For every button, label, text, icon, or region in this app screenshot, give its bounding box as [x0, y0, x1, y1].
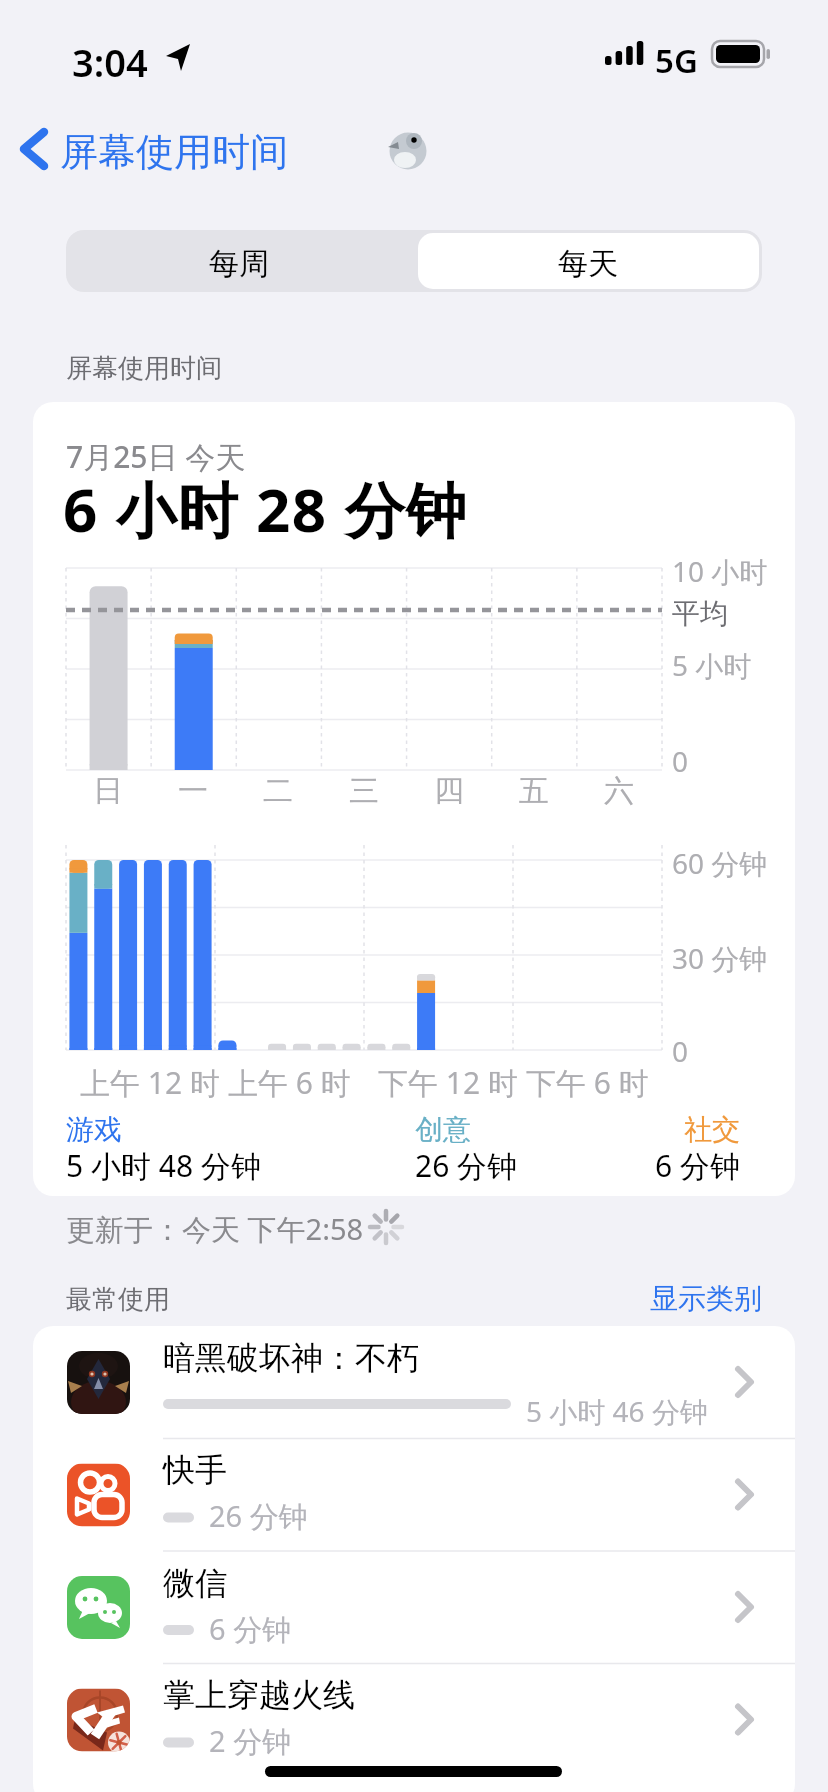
staticText: 二 — [263, 772, 293, 810]
button[interactable] — [66, 230, 414, 292]
staticText: 2 分钟 — [209, 1721, 292, 1761]
staticText: 一 — [178, 772, 208, 810]
staticText: 6 小时 28 分钟 — [63, 468, 468, 550]
staticText: 创意 — [415, 1112, 471, 1147]
staticText: 每天 — [558, 245, 618, 283]
staticText: 下午 6 时 — [526, 1062, 649, 1103]
staticText: 5 小时 48 分钟 — [66, 1145, 261, 1186]
staticText: 快手 — [163, 1450, 227, 1490]
staticText: 暗黑破坏神：不朽 — [163, 1338, 419, 1378]
staticText: 日 — [93, 772, 123, 810]
staticText: 10 小时 — [672, 552, 768, 590]
button[interactable] — [33, 1664, 795, 1776]
staticText: 26 分钟 — [415, 1145, 518, 1186]
staticText: 上午 6 时 — [228, 1062, 351, 1103]
staticText: 5G — [655, 38, 698, 83]
staticText: 7月25日 今天 — [66, 436, 246, 477]
staticText: 五 — [519, 772, 549, 810]
staticText: 社交 — [684, 1112, 740, 1147]
staticText: 0 — [672, 1032, 689, 1070]
staticText: 微信 — [163, 1563, 227, 1603]
staticText: 游戏 — [66, 1112, 122, 1147]
staticText: 平均 — [672, 596, 728, 631]
staticText: 四 — [434, 772, 464, 810]
staticText: 掌上穿越火线 — [163, 1675, 355, 1715]
staticText: 6 分钟 — [209, 1609, 292, 1649]
staticText: 更新于：今天 下午2:58 — [66, 1209, 364, 1249]
staticText: 26 分钟 — [209, 1496, 308, 1536]
staticText: 下午 12 时 — [378, 1062, 518, 1103]
staticText: 3:04 — [72, 36, 148, 88]
staticText: 屏幕使用时间 — [66, 352, 222, 385]
button[interactable] — [414, 230, 762, 292]
staticText: 六 — [604, 772, 634, 810]
staticText: 显示类别 — [650, 1281, 762, 1316]
staticText: 5 小时 — [672, 646, 752, 684]
staticText: 屏幕使用时间 — [60, 128, 288, 176]
button[interactable] — [645, 1275, 775, 1320]
staticText: 60 分钟 — [672, 844, 768, 882]
staticText: 5 小时 46 分钟 — [526, 1392, 708, 1430]
staticText: 0 — [672, 742, 689, 780]
staticText: 上午 12 时 — [80, 1062, 220, 1103]
staticText: 最常使用 — [66, 1283, 170, 1316]
staticText: 每周 — [209, 245, 269, 283]
button[interactable] — [33, 1439, 795, 1551]
button[interactable] — [14, 120, 294, 180]
button[interactable] — [33, 1551, 795, 1663]
staticText: 三 — [349, 772, 379, 810]
button[interactable] — [33, 1326, 795, 1438]
staticText: 6 分钟 — [655, 1145, 740, 1186]
staticText: 30 分钟 — [672, 939, 768, 977]
